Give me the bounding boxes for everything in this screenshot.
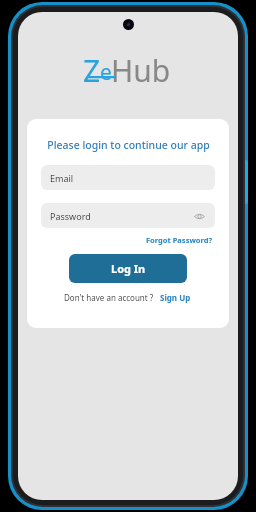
staticText: Log In: [111, 261, 146, 276]
staticText: Email: [50, 172, 74, 184]
button[interactable]: Sign Up: [159, 291, 192, 304]
staticText: Password: [50, 210, 91, 222]
button[interactable]: Password: [41, 203, 215, 228]
staticText: Hub: [111, 50, 171, 84]
button[interactable]: Email: [41, 165, 215, 190]
button[interactable]: Forgot Password?: [144, 234, 215, 246]
button[interactable]: Log In: [69, 254, 187, 283]
staticText: e: [100, 58, 112, 87]
staticText: Don't have an account ?: [64, 292, 154, 303]
button[interactable]: Show password: [192, 209, 206, 223]
staticText: Z: [83, 50, 101, 84]
staticText: Please login to continue our app: [47, 138, 210, 152]
